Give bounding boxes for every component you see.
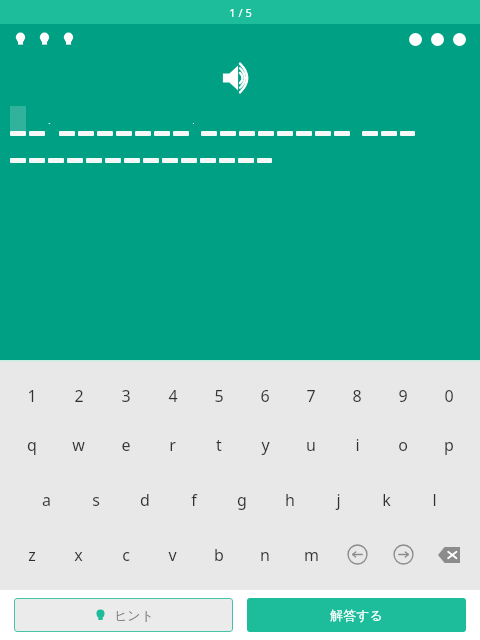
- button[interactable]: 5: [196, 375, 242, 417]
- staticText: x: [74, 544, 83, 566]
- staticText: o: [398, 434, 408, 456]
- staticText: r: [169, 434, 176, 456]
- button[interactable]: c: [102, 527, 149, 582]
- button[interactable]: 2: [55, 375, 102, 417]
- button[interactable]: f: [169, 472, 218, 527]
- button[interactable]: d: [120, 472, 169, 527]
- button[interactable]: s: [71, 472, 120, 527]
- staticText: 5: [214, 385, 224, 407]
- button[interactable]: Hint token: [56, 27, 80, 51]
- button[interactable]: k: [362, 472, 410, 527]
- staticText: c: [122, 544, 130, 566]
- button[interactable]: m: [288, 527, 334, 582]
- staticText: e: [121, 434, 131, 456]
- staticText: !: [48, 119, 51, 124]
- button[interactable]: j: [314, 472, 362, 527]
- button[interactable]: y: [242, 417, 288, 472]
- button[interactable]: Progress marker: [404, 28, 426, 50]
- staticText: j: [336, 489, 341, 511]
- button[interactable]: q: [8, 417, 55, 472]
- button[interactable]: Hint token: [32, 27, 56, 51]
- button[interactable]: Previous blank: [334, 527, 380, 582]
- button[interactable]: 3: [102, 375, 149, 417]
- button[interactable]: Play audio: [217, 55, 263, 101]
- button[interactable]: b: [196, 527, 242, 582]
- staticText: p: [444, 434, 454, 456]
- staticText: 6: [260, 385, 270, 407]
- button[interactable]: z: [8, 527, 55, 582]
- staticText: g: [237, 489, 247, 511]
- staticText: b: [214, 544, 224, 566]
- staticText: 0: [444, 385, 454, 407]
- button[interactable]: Backspace: [426, 527, 472, 582]
- staticText: v: [168, 544, 177, 566]
- button[interactable]: Progress marker: [426, 28, 448, 50]
- staticText: 解答する: [330, 607, 383, 623]
- staticText: w: [72, 434, 85, 456]
- button[interactable]: 9: [380, 375, 426, 417]
- staticText: t: [216, 434, 222, 456]
- button[interactable]: o: [380, 417, 426, 472]
- staticText: u: [306, 434, 316, 456]
- button[interactable]: Next blank: [380, 527, 426, 582]
- button[interactable]: ヒント: [14, 598, 233, 632]
- button[interactable]: u: [288, 417, 334, 472]
- button[interactable]: Progress marker: [448, 28, 470, 50]
- staticText: s: [92, 489, 100, 511]
- staticText: z: [28, 544, 36, 566]
- staticText: 1 / 5: [229, 5, 252, 20]
- staticText: d: [140, 489, 150, 511]
- button[interactable]: 8: [334, 375, 380, 417]
- button[interactable]: v: [149, 527, 196, 582]
- staticText: 4: [168, 385, 178, 407]
- staticText: y: [261, 434, 270, 456]
- button[interactable]: n: [242, 527, 288, 582]
- staticText: 9: [398, 385, 408, 407]
- staticText: f: [191, 489, 197, 511]
- button[interactable]: r: [149, 417, 196, 472]
- button[interactable]: g: [218, 472, 266, 527]
- button[interactable]: 7: [288, 375, 334, 417]
- staticText: 3: [121, 385, 131, 407]
- staticText: 7: [306, 385, 316, 407]
- button[interactable]: t: [196, 417, 242, 472]
- staticText: ヒント: [114, 607, 154, 623]
- button[interactable]: i: [334, 417, 380, 472]
- staticText: ': [192, 119, 195, 124]
- staticText: a: [42, 489, 51, 511]
- button[interactable]: h: [266, 472, 314, 527]
- staticText: 1: [27, 385, 37, 407]
- button[interactable]: 4: [149, 375, 196, 417]
- staticText: k: [382, 489, 391, 511]
- button[interactable]: l: [410, 472, 458, 527]
- button[interactable]: 6: [242, 375, 288, 417]
- button[interactable]: x: [55, 527, 102, 582]
- staticText: l: [432, 489, 437, 511]
- button[interactable]: e: [102, 417, 149, 472]
- staticText: i: [355, 434, 360, 456]
- button[interactable]: 解答する: [247, 598, 466, 632]
- button[interactable]: w: [55, 417, 102, 472]
- staticText: h: [285, 489, 295, 511]
- button[interactable]: 0: [426, 375, 472, 417]
- staticText: 2: [74, 385, 84, 407]
- button[interactable]: Hint token: [8, 27, 32, 51]
- staticText: m: [304, 544, 319, 566]
- staticText: q: [27, 434, 37, 456]
- staticText: 8: [352, 385, 362, 407]
- button[interactable]: 1: [8, 375, 55, 417]
- staticText: n: [260, 544, 270, 566]
- button[interactable]: p: [426, 417, 472, 472]
- button[interactable]: a: [22, 472, 71, 527]
